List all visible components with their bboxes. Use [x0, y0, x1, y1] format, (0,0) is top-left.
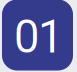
- button[interactable]: Step 01: [2, 0, 73, 70]
- staticText: 01: [14, 10, 63, 63]
